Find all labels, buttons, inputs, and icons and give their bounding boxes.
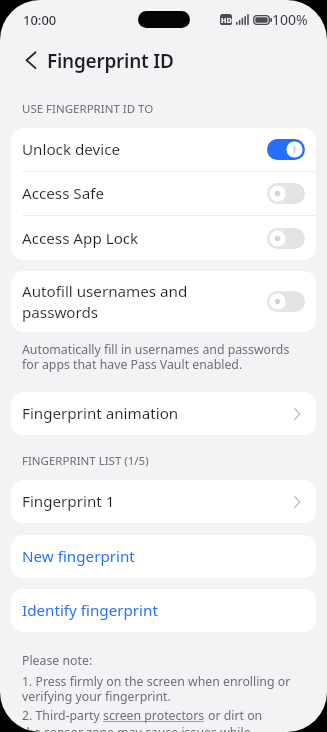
button[interactable]: Switch on: [267, 139, 305, 160]
button[interactable]: Switch off: [267, 183, 305, 204]
staticText: 2. Third-party: [22, 707, 103, 724]
button[interactable]: New fingerprint: [11, 535, 316, 578]
staticText: Access Safe: [22, 183, 104, 204]
staticText: the sensor zone may cause issues while: [22, 724, 251, 732]
staticText: Fingerprint 1: [22, 491, 115, 512]
button[interactable]: Switch off: [267, 291, 305, 312]
staticText: HD: [221, 15, 232, 25]
staticText: Identify fingerprint: [22, 600, 158, 621]
button[interactable]: Access App Lock: [11, 216, 316, 260]
staticText: 10:00: [23, 11, 57, 29]
button[interactable]: Fingerprint 1: [11, 480, 316, 523]
staticText: 1. Press firmly on the screen when enrol…: [22, 673, 303, 704]
button[interactable]: Unlock device: [11, 128, 316, 171]
staticText: Autofill usernames and passwords: [22, 281, 188, 322]
button[interactable]: Identify fingerprint: [11, 589, 316, 632]
button[interactable]: Back: [14, 45, 46, 77]
staticText: Please note:: [22, 652, 93, 669]
staticText: FINGERPRINT LIST (1/5): [22, 453, 149, 469]
button[interactable]: Autofill usernames and passwords: [11, 271, 316, 332]
button[interactable]: Switch off: [267, 228, 305, 249]
button[interactable]: Access Safe: [11, 172, 316, 215]
staticText: Fingerprint animation: [22, 403, 179, 424]
staticText: 100%: [272, 10, 308, 29]
staticText: Fingerprint ID: [47, 48, 174, 74]
staticText: New fingerprint: [22, 546, 135, 567]
staticText: Unlock device: [22, 139, 121, 160]
staticText: Automatically fill in usernames and pass…: [22, 341, 299, 372]
staticText: USE FINGERPRINT ID TO: [22, 101, 154, 117]
button[interactable]: Fingerprint animation: [11, 392, 316, 435]
staticText: or dirt on: [208, 707, 263, 724]
staticText: screen protectors: [103, 707, 208, 724]
staticText: Access App Lock: [22, 228, 139, 249]
